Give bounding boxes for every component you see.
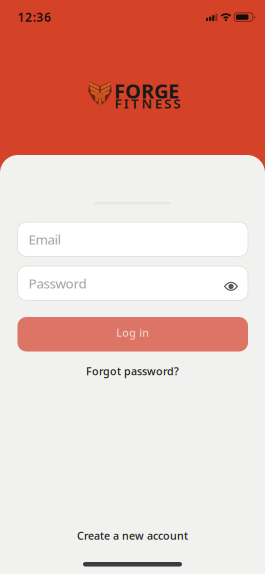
staticText: Password: [28, 274, 86, 292]
staticText: FORGE: [114, 77, 179, 104]
button[interactable]: Log in: [17, 317, 248, 351]
button[interactable]: Forgot password?: [86, 364, 179, 378]
staticText: 12:36: [17, 9, 51, 25]
button[interactable]: Show password: [224, 279, 238, 288]
staticText: Forgot password?: [86, 364, 179, 378]
button[interactable]: Create a new account: [77, 529, 188, 543]
staticText: Create a new account: [77, 529, 188, 543]
button[interactable]: Password: [17, 266, 248, 300]
staticText: FITNESS: [114, 94, 180, 112]
staticText: Log in: [116, 326, 149, 340]
button[interactable]: Email: [17, 222, 248, 256]
staticText: Email: [28, 230, 60, 248]
